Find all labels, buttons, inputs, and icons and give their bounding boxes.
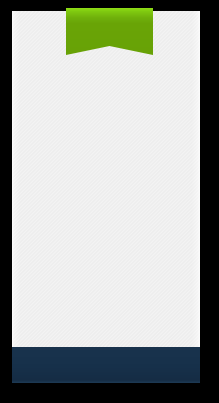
button[interactable]: Bookmark banner	[66, 8, 153, 55]
